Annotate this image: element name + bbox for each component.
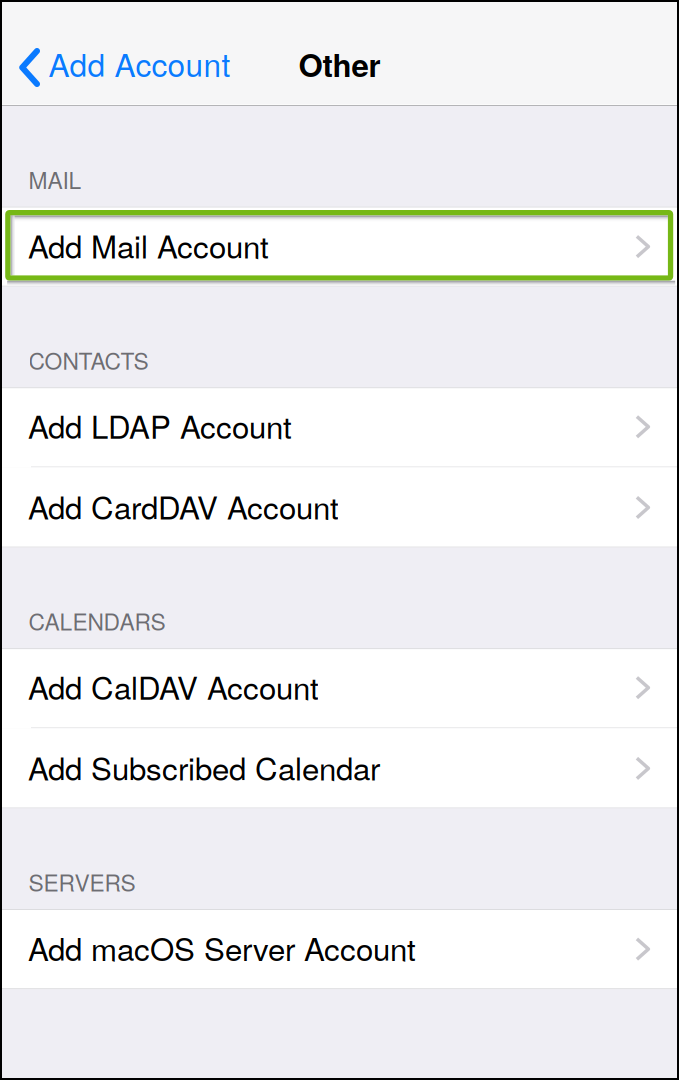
button[interactable]: Add Mail Account [2, 206, 677, 287]
staticText: Add Mail Account [28, 223, 269, 267]
staticText: Add CardDAV Account [28, 484, 339, 528]
button[interactable]: Add Subscribed Calendar [2, 728, 677, 808]
staticText: Add macOS Server Account [28, 925, 416, 970]
button[interactable]: Add Account [2, 2, 262, 104]
button[interactable]: Add macOS Server Account [2, 909, 677, 989]
staticText: Add CalDAV Account [28, 664, 319, 709]
staticText: SERVERS [28, 865, 135, 898]
button[interactable]: Add CalDAV Account [2, 648, 677, 728]
staticText: Add Subscribed Calendar [28, 745, 380, 789]
button[interactable]: Add LDAP Account [2, 387, 677, 467]
button[interactable]: Add CardDAV Account [2, 467, 677, 548]
staticText: CALENDARS [28, 604, 165, 637]
staticText: MAIL [28, 163, 81, 195]
staticText: CONTACTS [28, 344, 148, 376]
staticText: Other [298, 42, 380, 87]
staticText: Add LDAP Account [28, 403, 292, 448]
staticText: Add Account [48, 41, 230, 86]
